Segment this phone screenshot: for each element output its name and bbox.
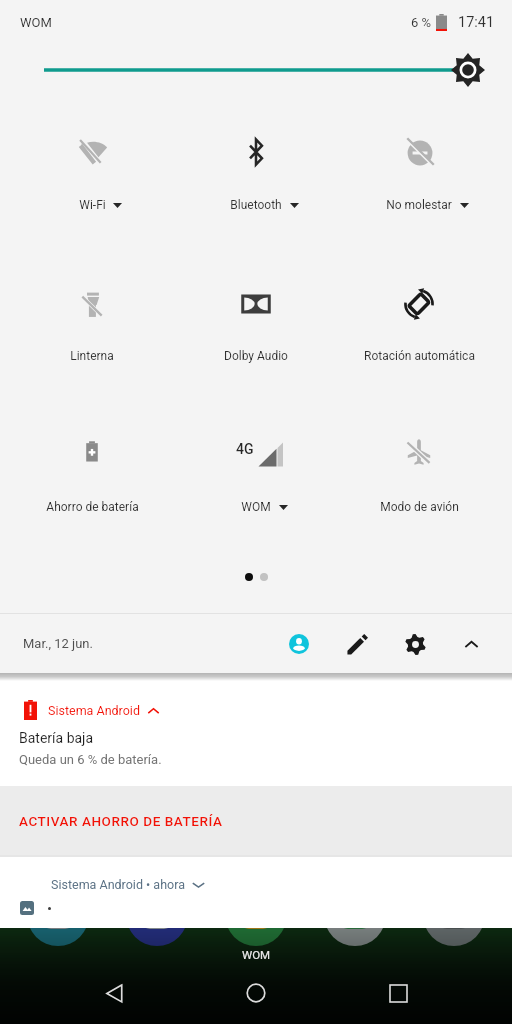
staticText: Sistema Android (48, 703, 140, 718)
staticText: 6 % (411, 15, 432, 30)
staticText: Batería baja (19, 730, 94, 746)
staticText: Rotación automática (364, 349, 475, 363)
button[interactable]: No molestar (339, 165, 499, 229)
button[interactable]: WOM (176, 467, 336, 531)
staticText: Ahorro de batería (46, 500, 139, 514)
button[interactable]: ACTIVAR AHORRO DE BATERÍA (0, 786, 512, 855)
button[interactable]: Home (228, 965, 284, 1021)
button[interactable]: Modo de avión (339, 467, 499, 531)
staticText: ACTIVAR AHORRO DE BATERÍA (19, 813, 223, 829)
staticText: Linterna (70, 349, 114, 363)
button[interactable]: User (279, 624, 319, 664)
button[interactable]: Recents (370, 965, 426, 1021)
button[interactable]: Rotación automática (339, 316, 499, 380)
staticText: Bluetooth (230, 198, 282, 212)
button[interactable]: Dolby Audio (176, 316, 336, 380)
button[interactable]: Collapse (451, 624, 491, 664)
staticText: WOM (242, 948, 271, 961)
button[interactable]: Sistema Android • ahora (0, 857, 512, 928)
staticText: WOM (241, 500, 271, 514)
button[interactable]: Settings (395, 624, 435, 664)
staticText: Dolby Audio (224, 349, 288, 363)
staticText: Queda un 6 % de batería. (19, 752, 162, 767)
staticText: 17:41 (458, 14, 495, 31)
staticText: Mar., 12 jun. (23, 636, 93, 651)
button[interactable]: Wi-Fi (12, 165, 172, 229)
staticText: WOM (20, 15, 52, 30)
staticText: 4G (236, 441, 254, 457)
staticText: Modo de avión (380, 500, 459, 514)
staticText: Sistema Android • ahora (51, 877, 185, 892)
button[interactable]: Ahorro de batería (12, 467, 172, 531)
button[interactable]: Bluetooth (176, 165, 336, 229)
button[interactable]: Linterna (12, 316, 172, 380)
button[interactable]: Back (86, 965, 142, 1021)
button[interactable]: Edit (337, 624, 377, 664)
staticText: No molestar (386, 198, 452, 212)
staticText: Wi-Fi (79, 198, 106, 212)
button[interactable]: Sistema Android (0, 681, 512, 786)
